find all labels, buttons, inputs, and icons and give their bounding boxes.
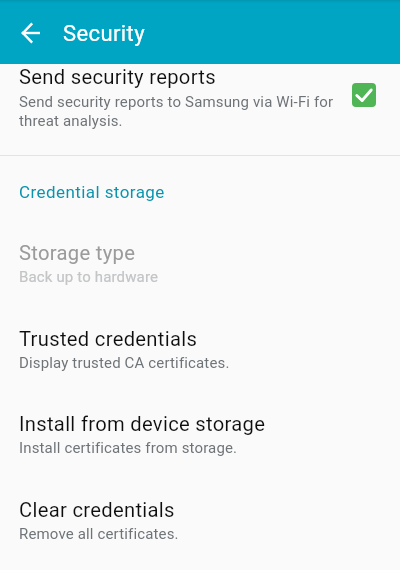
staticText: Credential storage: [19, 182, 165, 202]
button[interactable]: Clear credentials: [0, 480, 400, 565]
staticText: Install from device storage: [19, 412, 266, 436]
button[interactable]: Send security reports, checked: [352, 83, 376, 107]
staticText: Install certificates from storage.: [19, 439, 238, 457]
button[interactable]: Storage type: [0, 223, 400, 308]
staticText: Send security reports to Samsung via Wi-…: [19, 93, 334, 129]
button[interactable]: Send security reports: [0, 64, 400, 155]
button[interactable]: Trusted credentials: [0, 309, 400, 394]
staticText: Remove all certificates.: [19, 525, 179, 543]
staticText: Security: [63, 21, 145, 47]
staticText: Clear credentials: [19, 498, 175, 522]
staticText: Send security reports: [19, 65, 216, 89]
staticText: Storage type: [19, 241, 136, 265]
button[interactable]: Navigate up: [22, 24, 40, 42]
staticText: Back up to hardware: [19, 268, 159, 286]
staticText: Display trusted CA certificates.: [19, 354, 230, 372]
staticText: Trusted credentials: [19, 327, 198, 351]
button[interactable]: Install from device storage: [0, 394, 400, 479]
